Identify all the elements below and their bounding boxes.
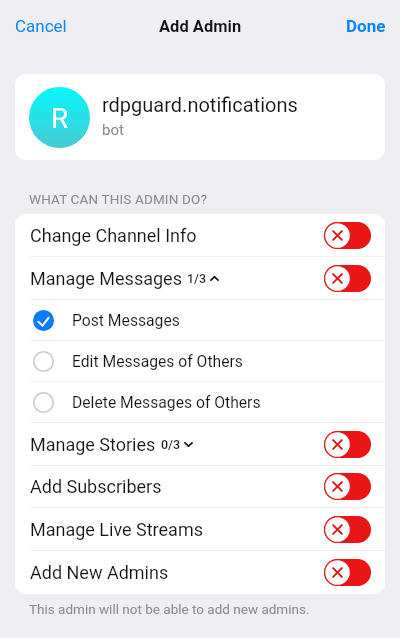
staticText: Add New Admins [30,562,169,583]
staticText: Manage Live Streams [30,519,203,540]
button[interactable]: Edit Messages of Others [15,341,385,381]
button[interactable]: Change Channel Info: off [324,222,371,249]
button[interactable]: Add New Admins: off [324,559,371,586]
button[interactable]: Add New Admins [15,551,385,594]
staticText: Post Messages [72,311,180,329]
button[interactable]: Post Messages [15,300,385,340]
button[interactable]: Change Channel Info [15,214,385,256]
staticText: Done [346,16,386,36]
staticText: rdpguard.notifications [102,93,298,116]
staticText: 0/3 [161,437,181,452]
staticText: Manage Messages [30,268,182,289]
staticText: Cancel [15,16,67,36]
staticText: R [51,102,69,135]
button[interactable]: Add Subscribers [15,466,385,507]
other: Collapse [210,276,219,281]
staticText: WHAT CAN THIS ADMIN DO? [29,191,207,207]
staticText: Add Admin [159,17,242,36]
staticText: 1/3 [187,271,207,286]
button[interactable]: Manage Stories: off [324,431,371,458]
other: Expand [184,442,193,447]
button[interactable]: Cancel [0,7,82,45]
button[interactable]: Delete Messages of Others [15,382,385,422]
staticText: Manage Stories [30,434,156,455]
button[interactable]: Manage Stories [15,423,385,465]
button[interactable]: R [15,74,385,160]
staticText: Add Subscribers [30,476,162,497]
button[interactable]: Manage Messages [15,257,385,299]
button[interactable]: Manage Messages: off [324,265,371,292]
staticText: Edit Messages of Others [72,352,243,370]
staticText: Delete Messages of Others [72,393,261,411]
button[interactable]: Manage Live Streams: off [324,516,371,543]
button[interactable]: Done [331,7,400,45]
staticText: This admin will not be able to add new a… [29,601,310,617]
staticText: Change Channel Info [30,225,197,246]
button[interactable]: Manage Live Streams [15,508,385,550]
staticText: bot [102,121,124,139]
button[interactable]: Add Subscribers: off [324,473,371,500]
